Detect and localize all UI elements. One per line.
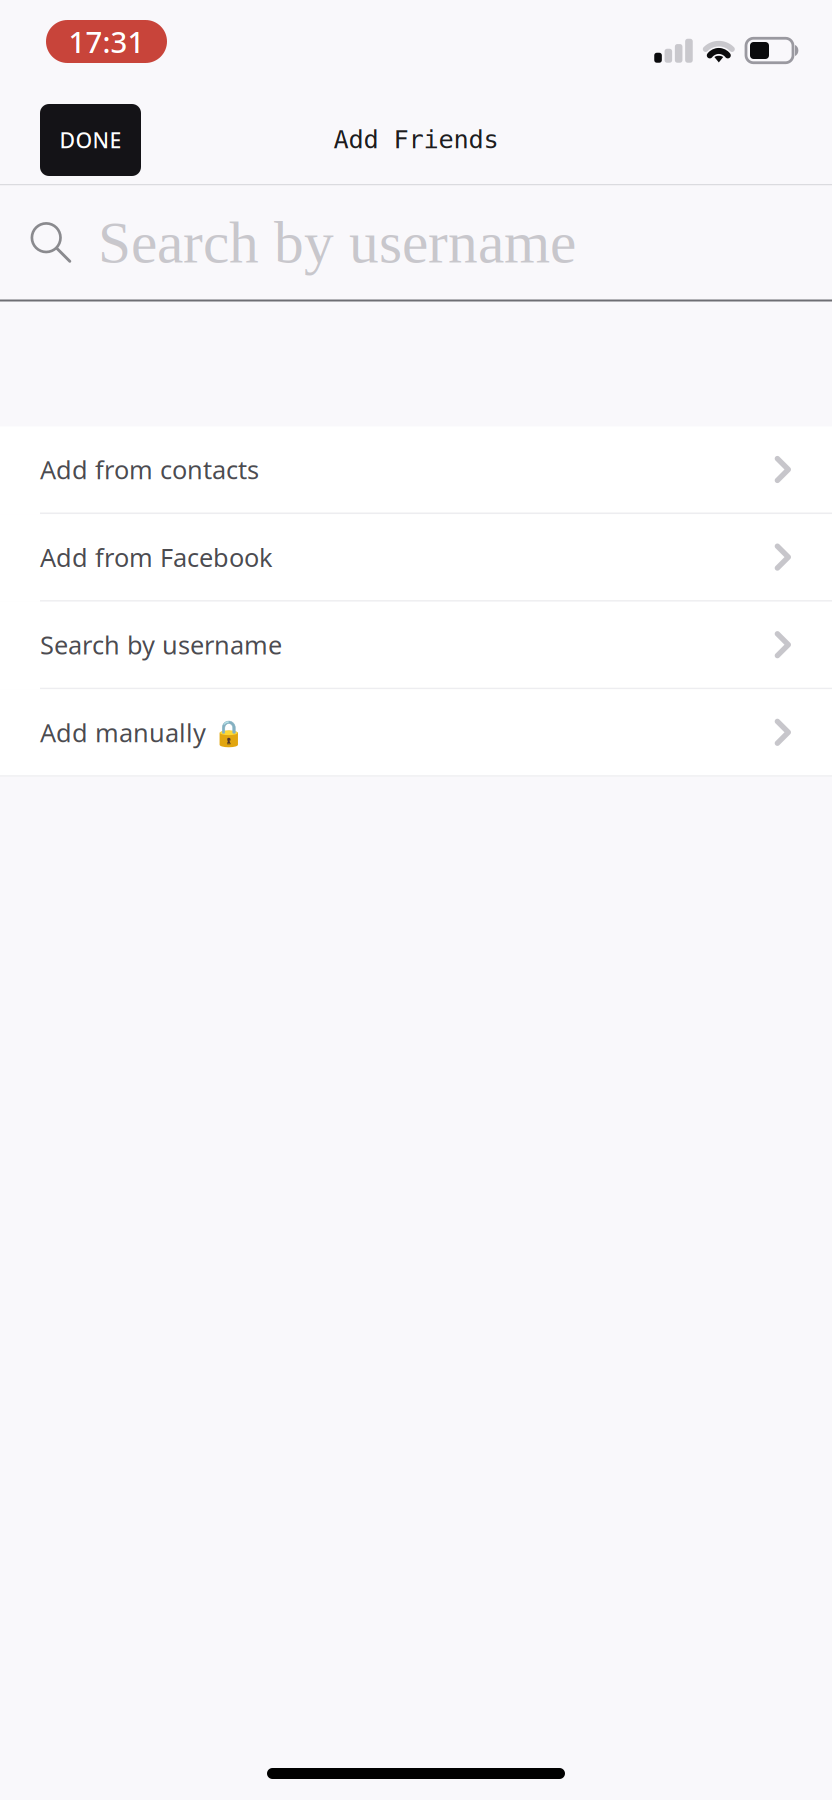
button[interactable]: Search by username (0, 602, 832, 689)
staticText: Add manually 🔒 (40, 715, 245, 749)
button[interactable]: DONE (40, 104, 141, 176)
staticText: 17:31 (68, 22, 144, 61)
button[interactable]: Add from Facebook (0, 514, 832, 602)
staticText: Add from Facebook (40, 540, 273, 574)
staticText: Search by username (40, 628, 282, 661)
staticText: DONE (59, 126, 121, 154)
staticText: Add from contacts (40, 453, 259, 486)
staticText: Search by username (98, 210, 576, 275)
button[interactable]: Add manually 🔒 (0, 689, 832, 777)
staticText: Add Friends (333, 125, 498, 154)
button[interactable]: Add from contacts (0, 426, 832, 514)
